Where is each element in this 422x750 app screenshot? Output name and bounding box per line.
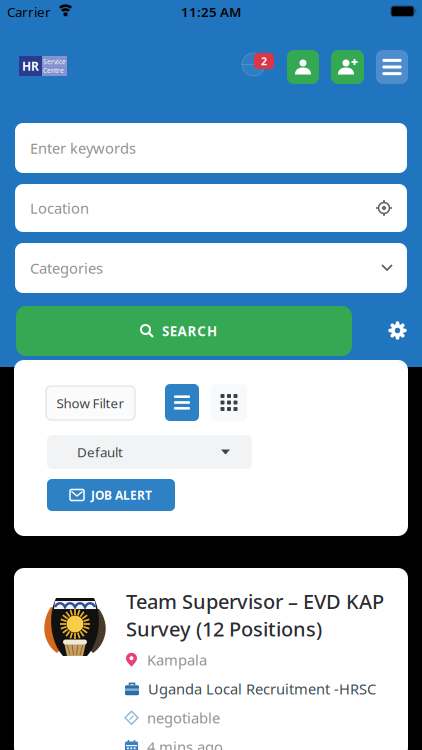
button[interactable]: Sign in [287,50,319,84]
staticText: Carrier [7,3,51,21]
staticText: Location [30,198,89,218]
staticText: Centre [43,66,64,75]
button[interactable]: Default [47,435,252,469]
button[interactable]: Enter keywords [15,123,407,173]
button[interactable]: Location [15,184,407,232]
button[interactable]: Show Filter [46,386,135,420]
staticText: 11:25 AM [181,3,241,21]
staticText: SEARCH [162,322,217,340]
button[interactable]: Notifications [242,53,274,76]
button[interactable]: Search settings [389,322,406,339]
button[interactable]: Grid view [211,384,247,421]
button[interactable]: HR Service Centre [19,56,67,76]
button[interactable]: Register [331,50,364,84]
button[interactable]: List view [165,384,199,421]
button[interactable]: Menu [376,50,408,84]
staticText: negotiable [147,708,220,727]
staticText: 2 [261,54,267,68]
staticText: Default [77,443,123,461]
button[interactable]: SEARCH [16,306,352,356]
staticText: 4 mins ago [147,737,223,750]
staticText: Show Filter [56,394,124,412]
staticText: Enter keywords [30,138,136,158]
staticText: Uganda Local Recruitment -HRSC [148,679,376,698]
button[interactable]: Team Supervisor – EVD KAP Survey (12 Pos… [14,568,408,750]
staticText: Kampala [147,650,207,669]
staticText: Service [43,57,66,66]
staticText: JOB ALERT [91,487,152,503]
staticText: Categories [30,258,103,278]
button[interactable]: JOB ALERT [47,479,175,511]
staticText: HR [22,58,39,74]
button[interactable]: Categories [15,243,407,293]
staticText: Team Supervisor – EVD KAP Survey (12 Pos… [126,588,384,642]
